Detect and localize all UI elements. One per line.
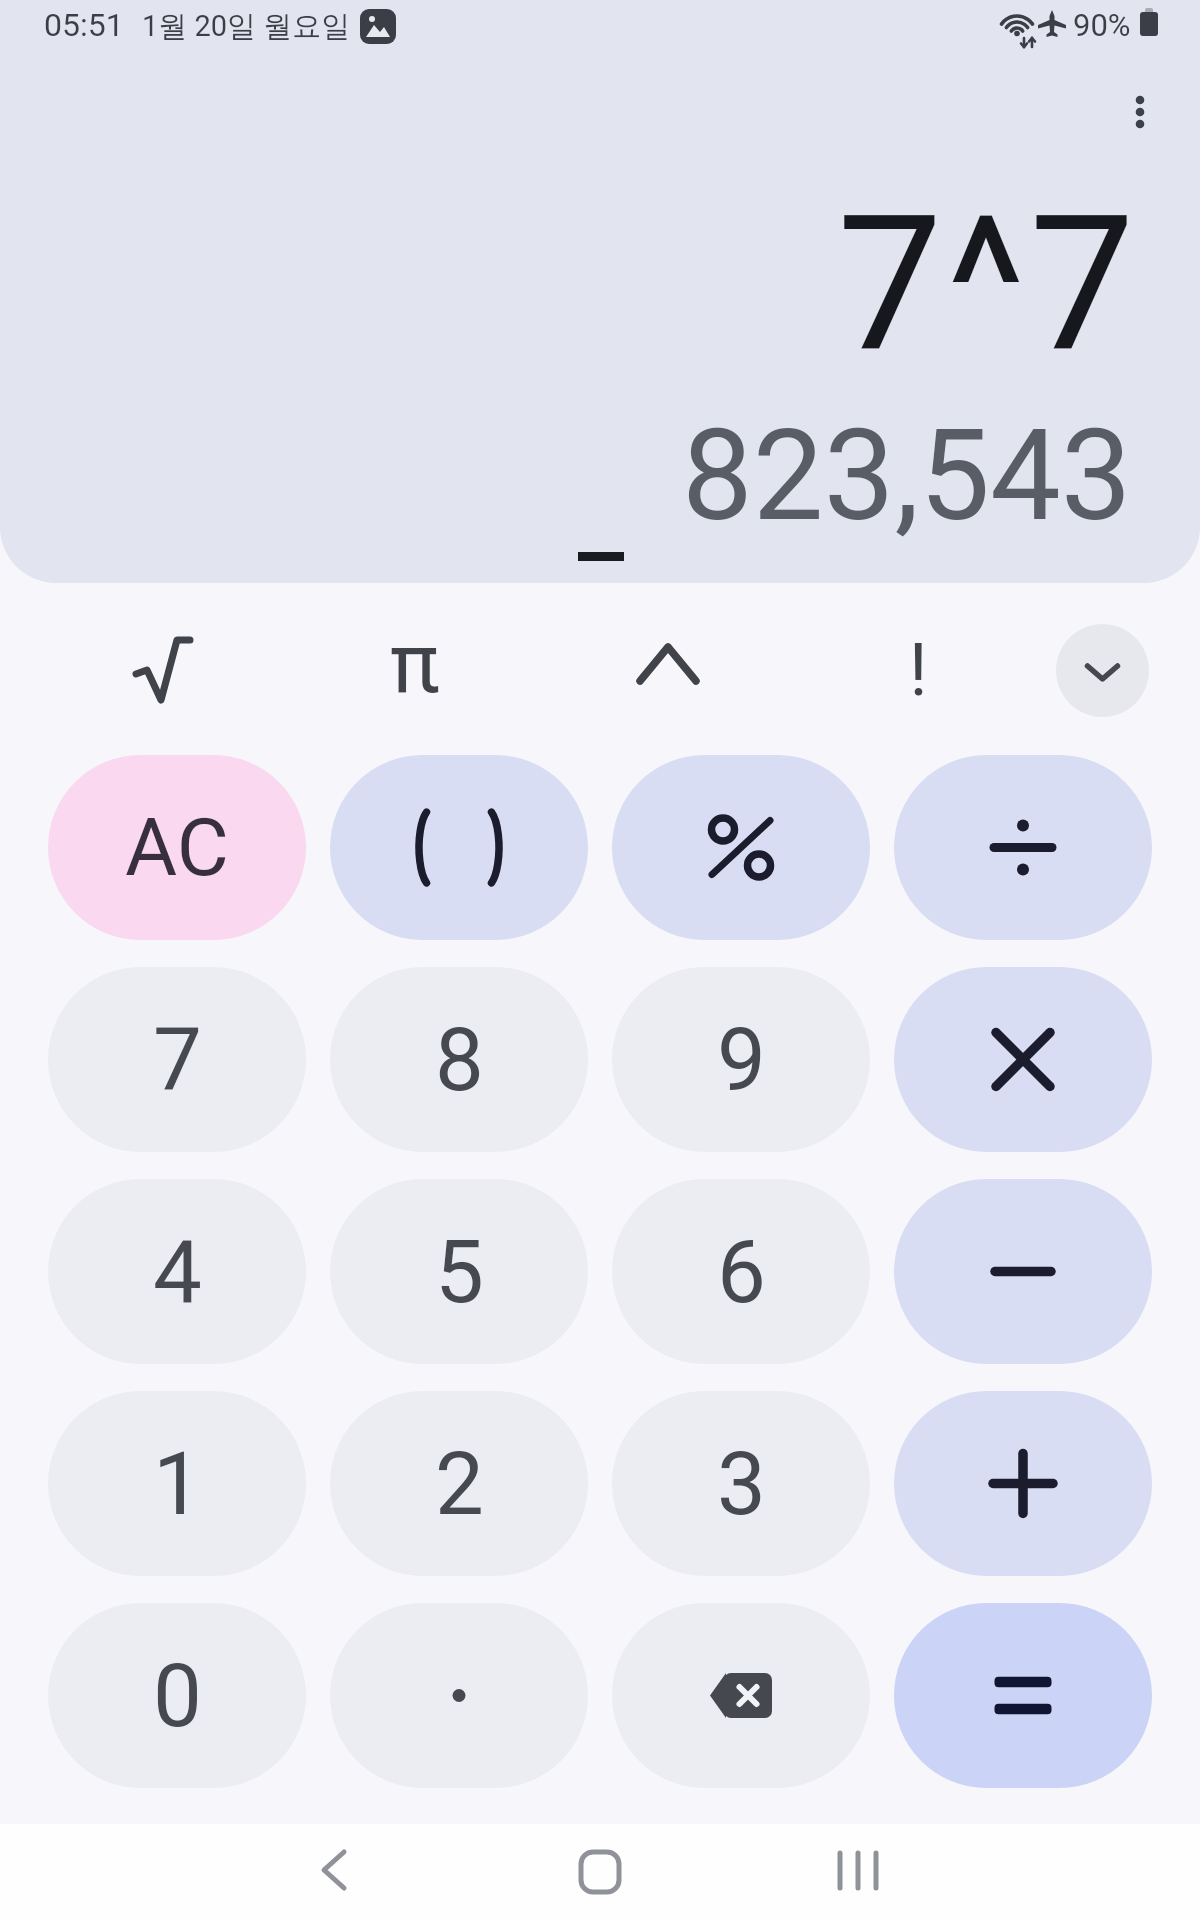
button[interactable] <box>612 1603 870 1788</box>
button[interactable] <box>608 610 728 730</box>
staticText: 1 <box>153 1433 202 1535</box>
staticText: 4 <box>153 1221 202 1323</box>
button[interactable]: 6 <box>612 1179 870 1364</box>
button[interactable] <box>1056 624 1149 717</box>
staticText: 2 <box>435 1433 484 1535</box>
staticText: 7^7 <box>837 175 1139 395</box>
staticText: π <box>390 615 440 712</box>
button[interactable] <box>894 755 1152 940</box>
button[interactable] <box>100 610 220 730</box>
button[interactable] <box>818 1830 898 1910</box>
button[interactable]: 4 <box>48 1179 306 1364</box>
staticText: 9 <box>717 1009 766 1111</box>
button[interactable]: 7 <box>48 967 306 1152</box>
button[interactable]: 8 <box>330 967 588 1152</box>
staticText: 90% <box>1073 7 1131 43</box>
staticText: 05:51 <box>44 6 124 44</box>
staticText: ! <box>909 628 928 712</box>
button[interactable]: π <box>355 603 475 723</box>
button[interactable]: 9 <box>612 967 870 1152</box>
button[interactable] <box>612 755 870 940</box>
button[interactable]: ! <box>858 610 978 730</box>
button[interactable] <box>894 1603 1152 1788</box>
button[interactable] <box>330 755 588 940</box>
staticText: 8 <box>435 1009 484 1111</box>
button[interactable] <box>294 1830 374 1910</box>
button[interactable]: 3 <box>612 1391 870 1576</box>
button[interactable] <box>560 1830 640 1910</box>
staticText: 1월 20일 월요일 <box>142 8 351 45</box>
staticText: 3 <box>717 1433 766 1535</box>
button[interactable]: 2 <box>330 1391 588 1576</box>
button[interactable]: 0 <box>48 1603 306 1788</box>
button[interactable]: 1 <box>48 1391 306 1576</box>
staticText: 7 <box>153 1009 202 1111</box>
button[interactable] <box>1124 84 1156 140</box>
button[interactable] <box>894 967 1152 1152</box>
staticText: 6 <box>717 1221 766 1323</box>
staticText: 0 <box>153 1645 202 1747</box>
button[interactable] <box>330 1603 588 1788</box>
button[interactable] <box>894 1391 1152 1576</box>
staticText: 823,543 <box>682 402 1132 550</box>
button[interactable] <box>894 1179 1152 1364</box>
staticText: 5 <box>435 1221 484 1323</box>
staticText: AC <box>125 801 229 895</box>
button[interactable]: AC <box>48 755 306 940</box>
button[interactable]: 5 <box>330 1179 588 1364</box>
